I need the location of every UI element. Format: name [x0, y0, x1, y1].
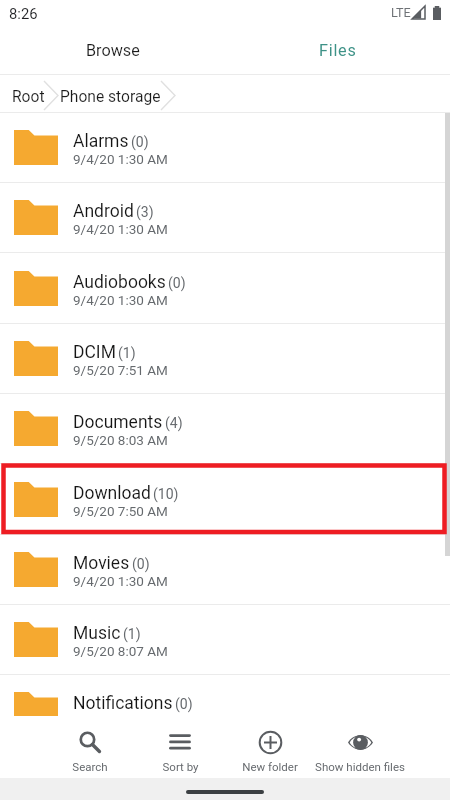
button[interactable]: Root — [5, 75, 51, 113]
staticText: Download — [73, 483, 151, 504]
staticText: 9/4/20 1:30 AM — [73, 151, 168, 167]
staticText: (0) — [132, 556, 150, 572]
button[interactable]: Sort by — [135, 716, 225, 778]
button[interactable]: Alarms — [0, 113, 450, 183]
button[interactable]: Download — [0, 465, 450, 535]
staticText: 9/4/20 1:30 AM — [73, 573, 168, 589]
staticText: Movies — [73, 553, 130, 574]
staticText: (0) — [175, 696, 193, 712]
staticText: Documents — [73, 412, 163, 433]
staticText: (0) — [131, 134, 149, 150]
staticText: New folder — [242, 760, 298, 773]
staticText: DCIM — [73, 342, 116, 363]
button[interactable]: Phone storage — [58, 75, 161, 113]
button[interactable]: Search — [45, 716, 135, 778]
button[interactable]: Music — [0, 605, 450, 675]
staticText: (4) — [165, 415, 183, 431]
staticText: (1) — [123, 626, 141, 642]
staticText: 9/5/20 8:03 AM — [73, 432, 168, 448]
button[interactable]: Documents — [0, 394, 450, 464]
button[interactable]: Notifications — [0, 675, 450, 716]
staticText: (1) — [118, 345, 136, 361]
staticText: 9/5/20 7:50 AM — [73, 503, 168, 519]
staticText: Search — [72, 760, 108, 773]
button[interactable]: Audiobooks — [0, 254, 450, 324]
staticText: LTE — [391, 5, 411, 20]
staticText: 9/5/20 8:07 AM — [73, 643, 168, 659]
staticText: Audiobooks — [73, 272, 166, 293]
staticText: Android — [73, 201, 134, 222]
button[interactable]: Show hidden files — [315, 716, 405, 778]
staticText: 8:26 — [9, 5, 38, 22]
staticText: 9/5/20 7:51 AM — [73, 362, 168, 378]
staticText: Music — [73, 623, 121, 644]
staticText: Browse — [86, 41, 140, 60]
button[interactable]: DCIM — [0, 324, 450, 394]
button[interactable]: Android — [0, 183, 450, 253]
button[interactable]: Files — [225, 25, 450, 74]
staticText: Notifications — [73, 693, 173, 714]
staticText: 9/4/20 1:30 AM — [73, 292, 168, 308]
staticText: Sort by — [162, 760, 199, 773]
staticText: Show hidden files — [315, 760, 405, 773]
staticText: Phone storage — [60, 88, 161, 106]
button[interactable]: Browse — [0, 25, 225, 74]
staticText: (0) — [168, 275, 186, 291]
staticText: Alarms — [73, 131, 129, 152]
staticText: (3) — [136, 204, 154, 220]
staticText: Root — [12, 88, 45, 106]
button[interactable]: New folder — [225, 716, 315, 778]
button[interactable]: Movies — [0, 535, 450, 605]
staticText: 9/4/20 1:30 AM — [73, 221, 168, 237]
staticText: Files — [319, 41, 357, 60]
staticText: (10) — [153, 486, 179, 502]
